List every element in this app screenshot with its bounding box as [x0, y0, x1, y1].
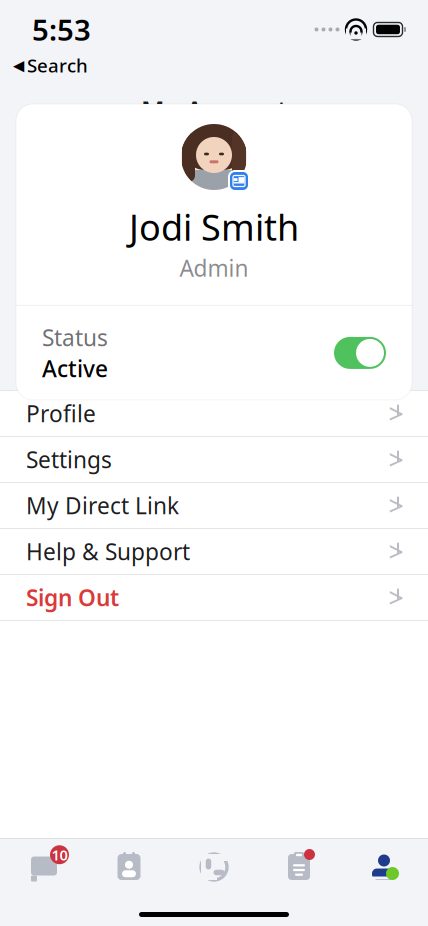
button[interactable]: Status Active toggle — [334, 337, 386, 369]
staticText: Profile — [26, 398, 96, 428]
staticText: > — [388, 534, 403, 569]
staticText: My Direct Link — [26, 490, 179, 520]
staticText: Sign Out — [26, 582, 119, 612]
button[interactable]: Contacts — [86, 843, 171, 891]
staticText: > — [388, 442, 403, 477]
button[interactable]: My Direct Link — [0, 483, 428, 528]
staticText: Settings — [26, 444, 112, 474]
button[interactable]: Phone — [171, 843, 256, 891]
button[interactable]: Sign Out — [0, 575, 428, 620]
staticText: Active — [42, 353, 108, 383]
button[interactable]: Change profile photo — [228, 170, 250, 192]
staticText: Help & Support — [26, 536, 190, 566]
button[interactable]: Messages — [1, 843, 86, 891]
button[interactable]: My Account — [341, 843, 426, 891]
staticText: Status — [42, 322, 108, 352]
staticText: > — [388, 396, 403, 431]
button[interactable]: Tasks — [256, 843, 341, 891]
button[interactable]: Profile — [0, 391, 428, 436]
staticText: ◀ — [13, 57, 24, 74]
staticText: Jodi Smith — [129, 203, 299, 251]
staticText: My Account — [141, 93, 287, 126]
button[interactable]: Settings — [0, 437, 428, 482]
staticText: 5:53 — [32, 10, 91, 49]
staticText: > — [388, 488, 403, 523]
button[interactable]: Help & Support — [0, 529, 428, 574]
staticText: > — [388, 580, 403, 615]
button[interactable]: Back to Search — [11, 51, 90, 80]
staticText: Search — [27, 53, 88, 78]
staticText: 10 — [51, 845, 67, 864]
staticText: Admin — [179, 253, 248, 283]
